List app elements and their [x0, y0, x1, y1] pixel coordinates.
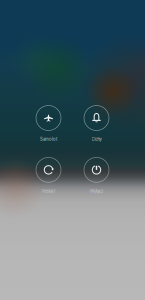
staticText: Wyłącz [90, 189, 103, 194]
button[interactable]: Cichy [72, 105, 120, 142]
button[interactable]: Samolot [24, 105, 72, 142]
staticText: Cichy [91, 137, 101, 142]
staticText: Restart [42, 189, 55, 194]
button[interactable]: Restart [24, 157, 72, 194]
button[interactable]: Wyłącz [72, 157, 120, 194]
staticText: Samolot [40, 137, 57, 142]
